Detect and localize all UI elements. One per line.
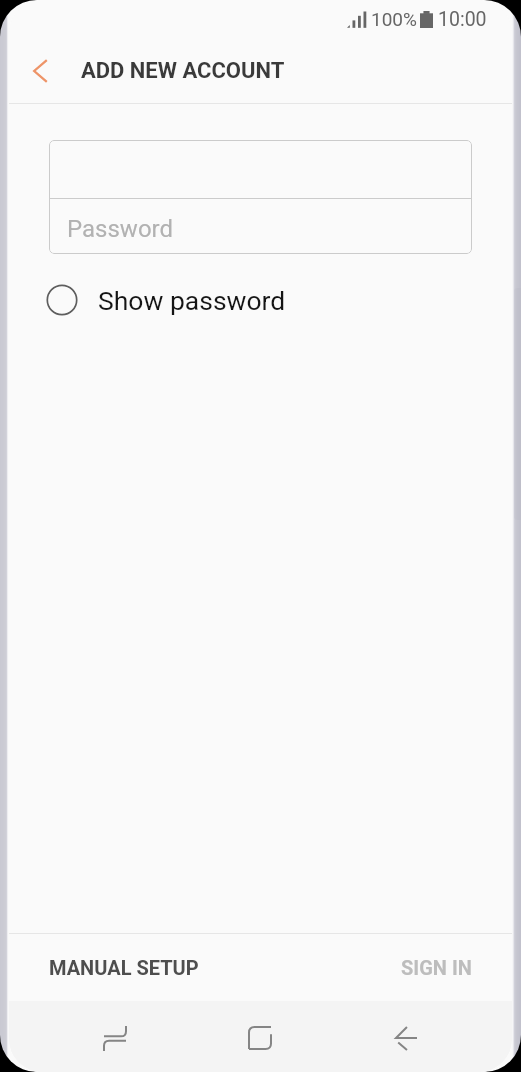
button[interactable]: Back — [333, 1004, 479, 1072]
button[interactable]: Show password — [47, 285, 286, 316]
button[interactable]: Home — [187, 1004, 333, 1072]
staticText: ADD NEW ACCOUNT — [81, 58, 285, 84]
staticText: Show password — [98, 285, 286, 316]
button[interactable]: Navigate up — [9, 44, 72, 98]
button[interactable]: MANUAL SETUP — [49, 934, 199, 1001]
staticText: 10:00 — [438, 8, 487, 31]
button[interactable]: SIGN IN — [401, 934, 472, 1001]
staticText: 100% — [371, 8, 417, 30]
button[interactable]: Recent apps — [42, 1004, 187, 1072]
staticText: SIGN IN — [401, 956, 472, 979]
button[interactable]: Email address — [49, 140, 472, 198]
staticText: MANUAL SETUP — [49, 956, 199, 979]
button[interactable]: Password — [49, 199, 472, 254]
staticText: Password — [67, 215, 174, 243]
